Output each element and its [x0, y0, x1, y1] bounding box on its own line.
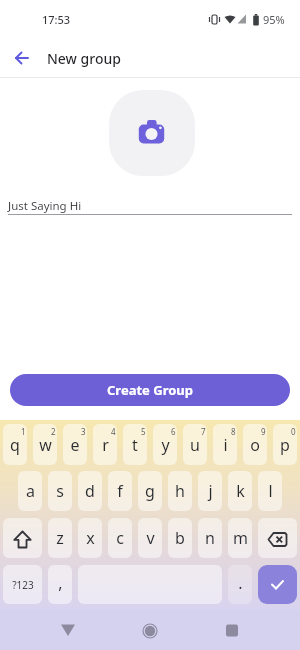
- button[interactable]: p: [273, 424, 297, 465]
- staticText: 95%: [263, 12, 285, 27]
- button[interactable]: a: [18, 471, 42, 511]
- staticText: Just Saying Hi: [8, 198, 82, 214]
- staticText: 0: [291, 426, 296, 437]
- staticText: y: [161, 434, 170, 456]
- staticText: ,: [58, 572, 63, 594]
- staticText: u: [190, 434, 200, 456]
- button[interactable]: t: [123, 424, 147, 465]
- staticText: Create Group: [107, 381, 193, 399]
- staticText: g: [145, 480, 155, 502]
- button[interactable]: .: [228, 565, 252, 600]
- button[interactable]: ?123: [3, 565, 42, 604]
- staticText: a: [26, 480, 35, 502]
- button[interactable]: n: [198, 518, 222, 558]
- staticText: 17:53: [42, 12, 71, 27]
- staticText: j: [208, 480, 213, 502]
- button[interactable]: k: [228, 471, 252, 511]
- button[interactable]: r: [93, 424, 117, 465]
- button[interactable]: h: [168, 471, 192, 511]
- staticText: 8: [231, 426, 236, 437]
- button[interactable]: c: [108, 518, 132, 558]
- staticText: t: [132, 434, 138, 456]
- button[interactable]: y: [153, 424, 177, 465]
- staticText: h: [175, 480, 185, 502]
- button[interactable]: e: [63, 424, 87, 465]
- button[interactable]: Create Group: [10, 374, 290, 406]
- button[interactable]: w: [33, 424, 57, 465]
- button[interactable]: d: [78, 471, 102, 511]
- button[interactable]: v: [138, 518, 162, 558]
- staticText: 2: [51, 426, 56, 437]
- button[interactable]: o: [243, 424, 267, 465]
- staticText: w: [39, 434, 52, 456]
- staticText: 9: [261, 426, 266, 437]
- staticText: n: [205, 527, 215, 549]
- staticText: 4: [111, 426, 116, 437]
- staticText: x: [86, 527, 95, 549]
- staticText: m: [233, 527, 248, 549]
- staticText: l: [268, 480, 273, 502]
- staticText: f: [117, 480, 123, 502]
- staticText: p: [280, 434, 290, 456]
- button[interactable]: s: [48, 471, 72, 511]
- button[interactable]: b: [168, 518, 192, 558]
- staticText: v: [146, 527, 155, 549]
- button[interactable]: g: [138, 471, 162, 511]
- staticText: c: [116, 527, 124, 549]
- staticText: 1: [21, 426, 26, 437]
- button[interactable]: [6, 42, 38, 74]
- staticText: 5: [141, 426, 146, 437]
- button[interactable]: u: [183, 424, 207, 465]
- staticText: b: [175, 527, 185, 549]
- button[interactable]: i: [213, 424, 237, 465]
- staticText: New group: [47, 49, 121, 68]
- staticText: s: [56, 480, 64, 502]
- button[interactable]: f: [108, 471, 132, 511]
- staticText: 6: [171, 426, 176, 437]
- staticText: ?123: [12, 578, 34, 592]
- staticText: o: [250, 434, 260, 456]
- staticText: z: [56, 527, 64, 549]
- button[interactable]: j: [198, 471, 222, 511]
- button[interactable]: m: [228, 518, 252, 558]
- button[interactable]: z: [48, 518, 72, 558]
- staticText: 3: [81, 426, 86, 437]
- button[interactable]: [109, 90, 195, 176]
- staticText: 7: [201, 426, 206, 437]
- staticText: r: [102, 434, 109, 456]
- button[interactable]: ,: [48, 565, 72, 600]
- button[interactable]: q: [3, 424, 27, 465]
- staticText: q: [10, 434, 20, 456]
- button[interactable]: x: [78, 518, 102, 558]
- staticText: .: [238, 572, 243, 594]
- staticText: i: [223, 434, 228, 456]
- staticText: k: [236, 480, 245, 502]
- button[interactable]: l: [258, 471, 282, 511]
- staticText: d: [85, 480, 95, 502]
- staticText: e: [70, 434, 80, 456]
